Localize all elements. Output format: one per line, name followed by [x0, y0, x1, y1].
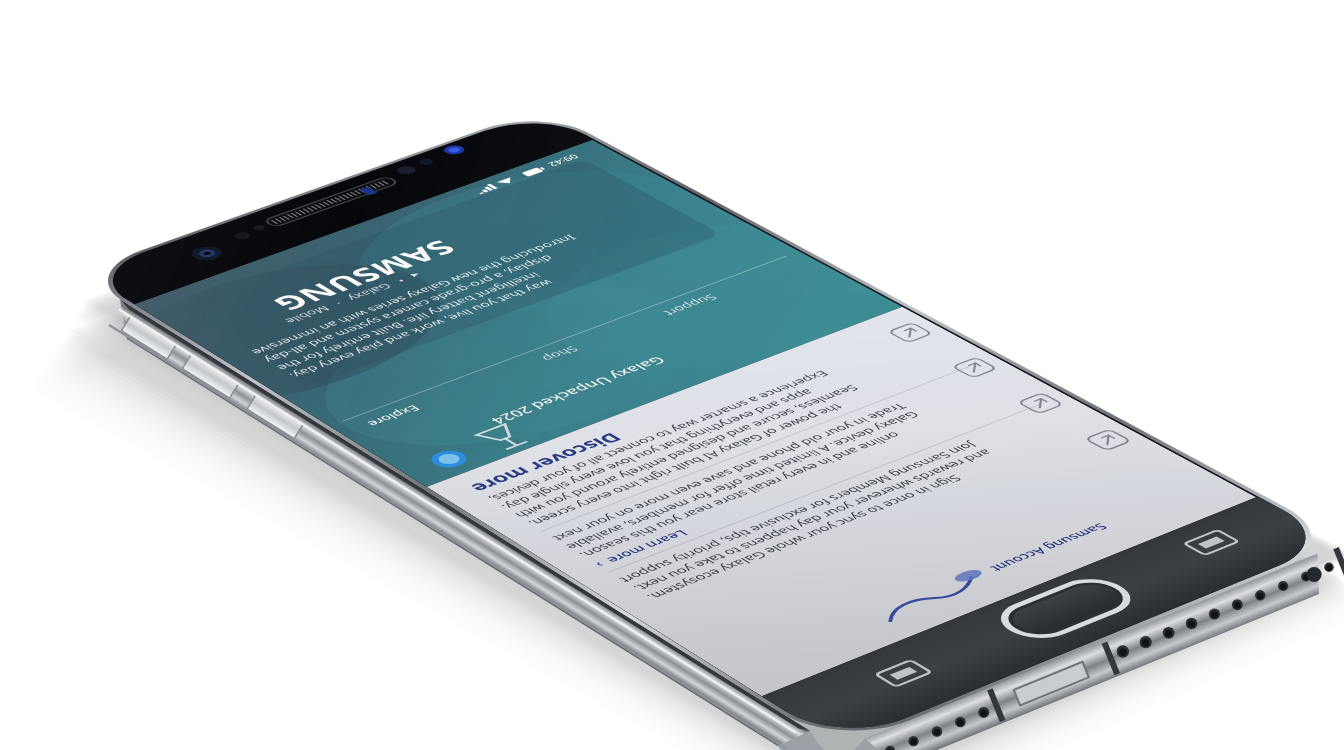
- button[interactable]: Open link: [961, 354, 1005, 394]
- button[interactable]: Learn more: [567, 572, 717, 616]
- button[interactable]: Support tab: [610, 288, 710, 332]
- button[interactable]: Open link: [1103, 431, 1147, 471]
- button[interactable]: Back: [1183, 525, 1239, 559]
- button[interactable]: Open link: [892, 316, 936, 356]
- button[interactable]: Notifications: [427, 439, 471, 479]
- button[interactable]: Home: [1006, 575, 1126, 641]
- button[interactable]: Shop tab: [488, 333, 588, 379]
- button[interactable]: Explore tab: [308, 397, 418, 445]
- button[interactable]: Open link: [1031, 392, 1075, 432]
- button[interactable]: Recent apps: [875, 656, 931, 690]
